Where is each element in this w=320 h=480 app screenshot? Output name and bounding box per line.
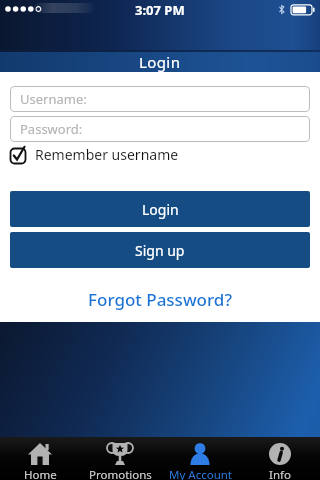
staticText: Promotions — [89, 467, 152, 480]
button[interactable]: Login — [10, 191, 310, 227]
staticText: Home — [24, 467, 57, 480]
button[interactable]: Home — [0, 437, 80, 480]
staticText: 3:07 PM — [135, 1, 185, 19]
button[interactable]: My Account — [160, 437, 240, 480]
button[interactable]: Sign up — [10, 232, 310, 268]
staticText: Username: — [20, 90, 87, 108]
staticText: Info — [269, 467, 291, 480]
staticText: Login — [142, 200, 179, 219]
button[interactable]: Info — [240, 437, 320, 480]
button[interactable]: Forgot Password? — [0, 288, 320, 311]
staticText: Login — [139, 52, 181, 72]
button[interactable]: Promotions — [80, 437, 160, 480]
button[interactable]: Remember username — [10, 145, 179, 164]
button[interactable]: Username: — [10, 86, 310, 112]
staticText: Password: — [20, 120, 83, 138]
staticText: Remember username — [35, 145, 179, 164]
staticText: Sign up — [135, 241, 185, 260]
staticText: My Account — [169, 467, 232, 480]
button[interactable]: Password: — [10, 116, 310, 142]
